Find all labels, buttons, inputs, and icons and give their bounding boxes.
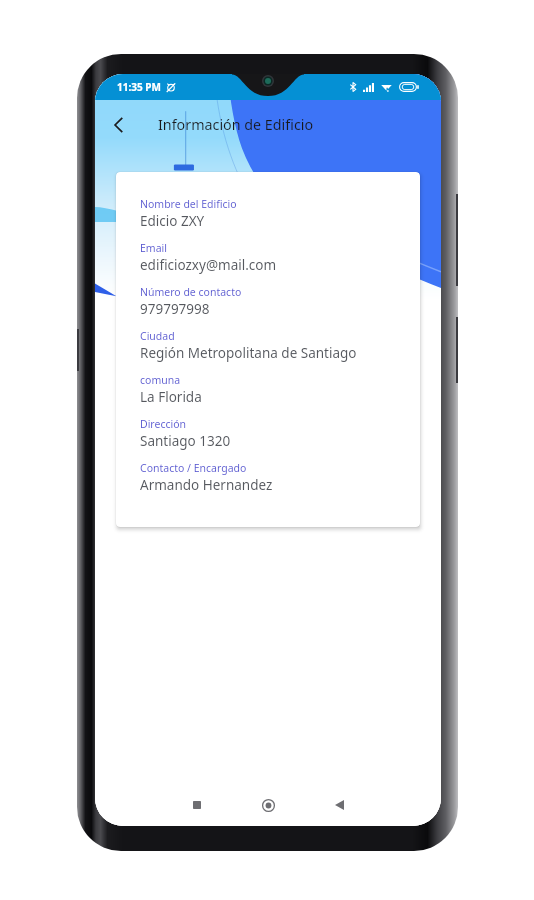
button[interactable]: Back — [323, 789, 355, 821]
staticText: Información de Edificio — [158, 115, 314, 134]
staticText: Nombre del Edificio — [140, 197, 237, 211]
button[interactable]: Nombre del Edificio — [116, 172, 420, 527]
staticText: Región Metropolitana de Santiago — [140, 344, 357, 362]
staticText: comuna — [140, 373, 181, 387]
staticText: 11:35 PM — [117, 80, 161, 94]
staticText: La Florida — [140, 388, 202, 406]
staticText: 979797998 — [140, 300, 210, 318]
staticText: Santiago 1320 — [140, 432, 231, 450]
staticText: Armando Hernandez — [140, 476, 273, 494]
staticText: Contacto / Encargado — [140, 461, 247, 475]
staticText: Email — [140, 241, 167, 255]
staticText: Edicio ZXY — [140, 212, 205, 230]
staticText: Número de contacto — [140, 285, 242, 299]
staticText: Ciudad — [140, 329, 175, 343]
button[interactable]: Recents — [181, 789, 213, 821]
button[interactable]: Home — [252, 789, 284, 821]
button[interactable]: Back — [101, 108, 135, 142]
staticText: edificiozxy@mail.com — [140, 256, 277, 274]
staticText: Dirección — [140, 417, 187, 431]
